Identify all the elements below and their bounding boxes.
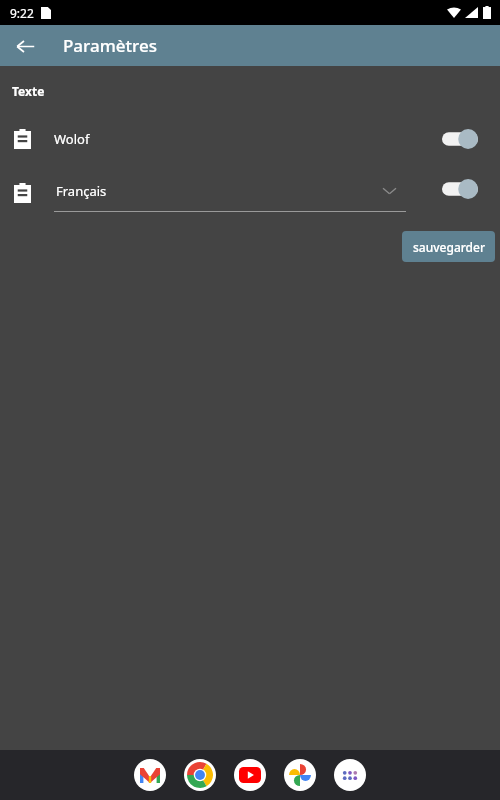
button[interactable]: All apps	[334, 759, 366, 791]
button[interactable]: Photos	[284, 759, 316, 791]
button[interactable]: Wolof	[0, 119, 500, 159]
button[interactable]: Chrome	[184, 759, 216, 791]
button[interactable]: Français	[54, 174, 406, 212]
staticText: sauvegarder	[413, 239, 485, 255]
button[interactable]: YouTube	[234, 759, 266, 791]
button[interactable]: sauvegarder	[402, 231, 495, 262]
staticText: Texte	[12, 83, 45, 99]
staticText: Paramètres	[63, 34, 157, 57]
staticText: 9:22	[10, 5, 34, 21]
button[interactable]: Toggle	[442, 178, 478, 200]
button[interactable]: Gmail	[134, 759, 166, 791]
button[interactable]: Toggle	[442, 128, 478, 150]
button[interactable]: Back	[10, 31, 40, 61]
staticText: Français	[56, 182, 107, 200]
staticText: Wolof	[54, 130, 90, 148]
